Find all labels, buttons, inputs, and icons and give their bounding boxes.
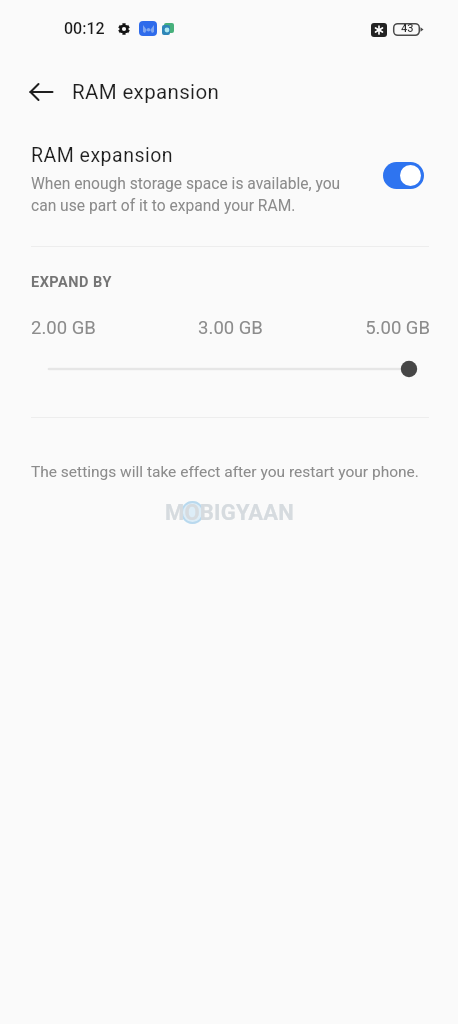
button[interactable]: Expand by, 5.00 GB [0,353,458,385]
staticText: 3.00 GB [164,317,297,339]
staticText: The settings will take effect after you … [31,463,419,481]
staticText: RAM expansion [72,80,220,104]
staticText: EXPAND BY [31,274,112,291]
staticText: 00:12 [64,19,105,38]
button[interactable]: Back [25,75,59,109]
button[interactable]: RAM expansion [0,138,458,220]
staticText: RAM expansion [31,144,174,167]
staticText: When enough storage space is available, … [31,175,343,215]
button[interactable]: RAM expansion switch, on [383,162,424,189]
staticText: 2.00 GB [31,317,164,339]
staticText: MOBIGYAAN [165,500,294,526]
staticText: 43 [401,22,414,35]
staticText: 5.00 GB [297,317,430,339]
